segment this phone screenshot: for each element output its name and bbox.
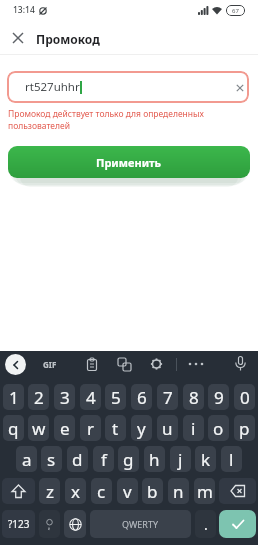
button[interactable]: p (234, 415, 255, 441)
button[interactable]: l (221, 446, 242, 472)
button[interactable]: v (117, 478, 138, 504)
button[interactable]: 9 (208, 384, 229, 410)
staticText: 1 (9, 386, 19, 409)
button[interactable]: rt527uhhr (7, 71, 249, 103)
button[interactable] (2, 478, 35, 504)
button[interactable]: w (28, 415, 49, 441)
staticText: j (178, 448, 183, 471)
button[interactable]: c (91, 478, 112, 504)
staticText: n (173, 480, 184, 503)
staticText: z (46, 480, 54, 503)
staticText: h (149, 448, 160, 471)
button[interactable]: 6 (131, 384, 152, 410)
button[interactable]: t (105, 415, 126, 441)
button[interactable]: e (54, 415, 75, 441)
staticText: 6 (137, 386, 147, 409)
staticText: 0 (240, 386, 250, 409)
staticText: d (72, 448, 83, 471)
staticText: y (137, 417, 146, 440)
button[interactable]: 2 (28, 384, 49, 410)
staticText: x (71, 480, 80, 503)
staticText: u (162, 417, 173, 440)
button[interactable]: 7 (157, 384, 178, 410)
staticText: q (8, 417, 19, 440)
staticText: Промокод (36, 31, 100, 47)
staticText: 13:14 (13, 4, 35, 16)
button[interactable]: o (208, 415, 229, 441)
staticText: c (97, 480, 106, 503)
button[interactable]: h (144, 446, 165, 472)
staticText: ?123 (8, 517, 30, 531)
button[interactable]: i (183, 415, 204, 441)
staticText: QWERTY (122, 518, 159, 530)
button[interactable]: 0 (234, 384, 255, 410)
button[interactable]: s (41, 446, 62, 472)
staticText: 2 (34, 386, 44, 409)
staticText: 8 (189, 386, 199, 409)
button[interactable]: 5 (105, 384, 126, 410)
button[interactable]: q (3, 415, 24, 441)
staticText: v (123, 480, 132, 503)
button[interactable]: ?123 (2, 510, 35, 538)
staticText: k (201, 448, 211, 471)
staticText: i (191, 417, 196, 440)
button[interactable]: u (157, 415, 178, 441)
button[interactable]: Применить (8, 146, 250, 178)
staticText: 9 (214, 386, 224, 409)
staticText: r (87, 417, 95, 440)
staticText: GIF (43, 359, 57, 370)
staticText: o (213, 417, 224, 440)
button[interactable]: z (39, 478, 60, 504)
staticText: b (147, 480, 158, 503)
staticText: l (229, 448, 234, 471)
staticText: 3 (60, 386, 70, 409)
staticText: a (22, 448, 32, 471)
button[interactable]: . (195, 510, 216, 538)
button[interactable]: m (194, 478, 215, 504)
button[interactable]: j (170, 446, 191, 472)
button[interactable]: f (93, 446, 114, 472)
button[interactable]: QWERTY (90, 510, 191, 538)
staticText: m (197, 480, 213, 503)
button[interactable]: x (65, 478, 86, 504)
button[interactable] (8, 28, 28, 48)
staticText: 5 (111, 386, 121, 409)
staticText: f (101, 448, 107, 471)
staticText: w (32, 417, 46, 440)
button[interactable]: b (142, 478, 163, 504)
button[interactable] (64, 510, 86, 538)
staticText: g (123, 448, 134, 471)
button[interactable]: a (16, 446, 37, 472)
staticText: e (60, 417, 70, 440)
staticText: . (204, 515, 208, 534)
staticText: Применить (96, 155, 162, 170)
button[interactable]: 8 (183, 384, 204, 410)
button[interactable]: g (118, 446, 139, 472)
button[interactable] (219, 478, 256, 504)
button[interactable]: n (168, 478, 189, 504)
staticText: 4 (86, 386, 96, 409)
staticText: rt527uhhr (25, 79, 80, 95)
staticText: Промокод действует только для определенн… (8, 108, 204, 132)
staticText: s (47, 448, 56, 471)
button[interactable] (219, 510, 256, 538)
button[interactable]: k (195, 446, 216, 472)
button[interactable]: y (131, 415, 152, 441)
button[interactable]: 4 (80, 384, 101, 410)
button[interactable]: 3 (54, 384, 75, 410)
staticText: 7 (163, 386, 173, 409)
button[interactable]: 1 (3, 384, 24, 410)
button[interactable]: r (80, 415, 101, 441)
staticText: p (239, 417, 250, 440)
button[interactable]: d (67, 446, 88, 472)
staticText: t (112, 417, 119, 440)
staticText: 67 (232, 7, 239, 15)
button[interactable] (5, 354, 26, 375)
button[interactable] (39, 510, 60, 538)
